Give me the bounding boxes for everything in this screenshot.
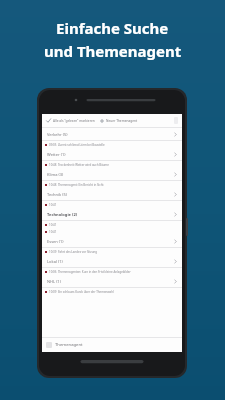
- staticText: Neuer Themenagent: [106, 119, 138, 123]
- button[interactable]: 10:09 Ein schlaues Kurzk über der Themen…: [42, 288, 182, 295]
- button[interactable]: 10:39 Fahrt des Landes vor Sitzung: [42, 248, 182, 255]
- button[interactable]: Lokal (1): [42, 255, 182, 268]
- staticText: Wetter (1): [47, 152, 66, 157]
- staticText: Klima (3): [47, 172, 64, 177]
- button[interactable]: Themenagent: [42, 338, 182, 352]
- staticText: 10:41: [49, 203, 57, 207]
- staticText: NHL (1): [47, 279, 61, 284]
- button[interactable]: NHL (1): [42, 275, 182, 288]
- staticText: und Themenagent: [44, 41, 182, 61]
- staticText: 10:09 Ein schlaues Kurzk über der Themen…: [49, 290, 114, 294]
- staticText: Alle als "gelesen" markieren: [53, 119, 95, 123]
- button[interactable]: 10:48 Themenagent: Ein Bericht in Sicht: [42, 181, 182, 188]
- staticText: Essen (1): [47, 239, 64, 244]
- button[interactable]: Essen (1): [42, 235, 182, 248]
- staticText: Einfache Suche: [56, 18, 169, 38]
- staticText: 10:39 Fahrt des Landes vor Sitzung: [49, 250, 98, 254]
- staticText: 09:05 Zuerst schliesst Lärm bei Baustell…: [49, 143, 105, 147]
- staticText: Technologie (2): [47, 212, 78, 217]
- staticText: 10:41: [49, 230, 57, 234]
- button[interactable]: 10:41: [42, 228, 182, 235]
- button[interactable]: Klima (3): [42, 168, 182, 181]
- staticText: 10:41: [49, 223, 57, 227]
- button[interactable]: Verkehr (5): [42, 128, 182, 141]
- button[interactable]: 09:05 Zuerst schliesst Lärm bei Baustell…: [42, 141, 182, 148]
- button[interactable]: Wetter (1): [42, 148, 182, 161]
- button[interactable]: 10:48 Trockenheit: Wetter wird auch Bäum…: [42, 161, 182, 168]
- button[interactable]: 10:41: [42, 201, 182, 208]
- button[interactable]: Neuer Themenagent: [100, 119, 138, 123]
- staticText: 10:48 Themenagent: Ein Bericht in Sicht: [49, 183, 104, 187]
- button[interactable]: Technik (5): [42, 188, 182, 201]
- staticText: 10:06 Themenagenten: Kurz in den Frist k…: [49, 270, 131, 274]
- button[interactable]: Technologie (2): [42, 208, 182, 221]
- staticText: Technik (5): [47, 192, 67, 197]
- staticText: 10:48 Trockenheit: Wetter wird auch Bäum…: [49, 163, 109, 167]
- button[interactable]: Alle als "gelesen" markieren: [46, 118, 95, 123]
- staticText: Themenagent: [55, 342, 83, 348]
- staticText: Lokal (1): [47, 259, 63, 264]
- button[interactable]: 10:06 Themenagenten: Kurz in den Frist k…: [42, 268, 182, 275]
- button[interactable]: 10:41: [42, 221, 182, 228]
- staticText: Verkehr (5): [47, 132, 68, 137]
